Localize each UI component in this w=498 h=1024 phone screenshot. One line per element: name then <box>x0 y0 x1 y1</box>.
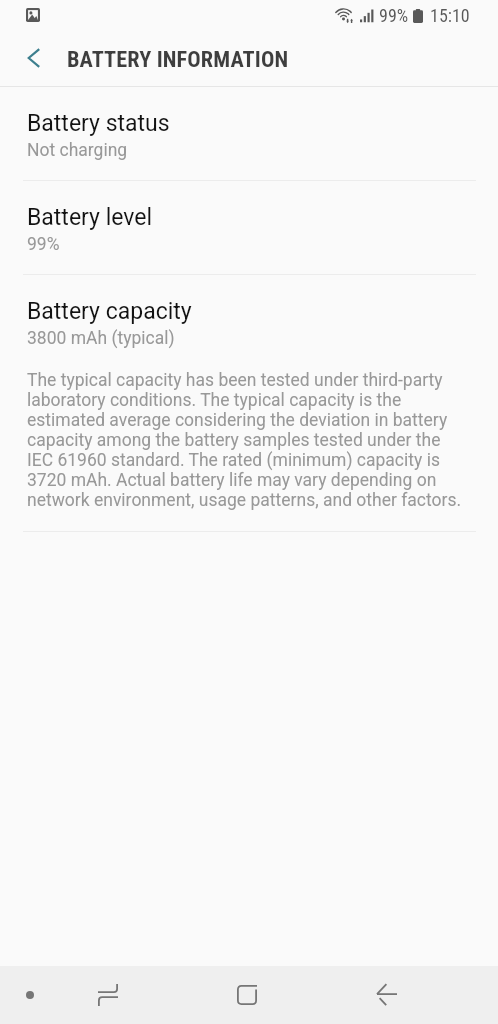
staticText: Not charging <box>27 140 128 161</box>
button[interactable]: Navigate up <box>12 36 56 80</box>
staticText: The typical capacity has been tested und… <box>27 370 464 510</box>
button[interactable]: Home <box>177 966 317 1024</box>
button[interactable]: Battery level <box>0 181 498 274</box>
staticText: 99% <box>27 234 60 255</box>
button[interactable]: Hide navigation bar <box>14 979 46 1011</box>
button[interactable]: Battery capacity <box>0 275 498 531</box>
staticText: 3800 mAh (typical) <box>27 328 175 349</box>
button[interactable]: Recent apps <box>38 966 177 1024</box>
staticText: Battery status <box>27 110 170 137</box>
button[interactable]: Battery status <box>0 87 498 180</box>
staticText: BATTERY INFORMATION <box>67 46 289 72</box>
staticText: 99% <box>379 5 409 26</box>
button[interactable]: Back <box>317 966 457 1024</box>
staticText: Battery level <box>27 204 153 231</box>
staticText: Battery capacity <box>27 298 192 325</box>
staticText: 15:10 <box>430 5 470 26</box>
